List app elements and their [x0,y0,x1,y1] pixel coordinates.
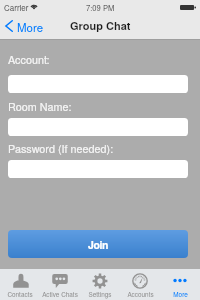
staticText: Password (If needed): [8,141,114,156]
staticText: Account: [8,52,50,67]
staticText: 7:09 PM [86,2,115,13]
staticText: Carrier [4,2,29,13]
button[interactable] [8,75,188,93]
staticText: Settings [88,290,112,299]
button[interactable]: Accounts [120,269,160,300]
staticText: More [17,19,44,35]
staticText: Accounts [127,290,154,299]
button[interactable]: More [160,269,200,300]
staticText: Group Chat [70,18,131,34]
button[interactable]: Active Chats [40,269,80,300]
staticText: Contacts [7,290,33,299]
button[interactable] [8,160,188,178]
staticText: More [173,290,188,299]
staticText: Room Name: [8,99,72,114]
staticText: Join [88,237,108,252]
button[interactable] [8,118,188,136]
button[interactable]: Join [8,230,188,258]
staticText: Active Chats [42,290,78,299]
button[interactable]: Contacts [0,269,40,300]
button[interactable]: Settings [80,269,120,300]
button[interactable]: More [3,16,50,36]
